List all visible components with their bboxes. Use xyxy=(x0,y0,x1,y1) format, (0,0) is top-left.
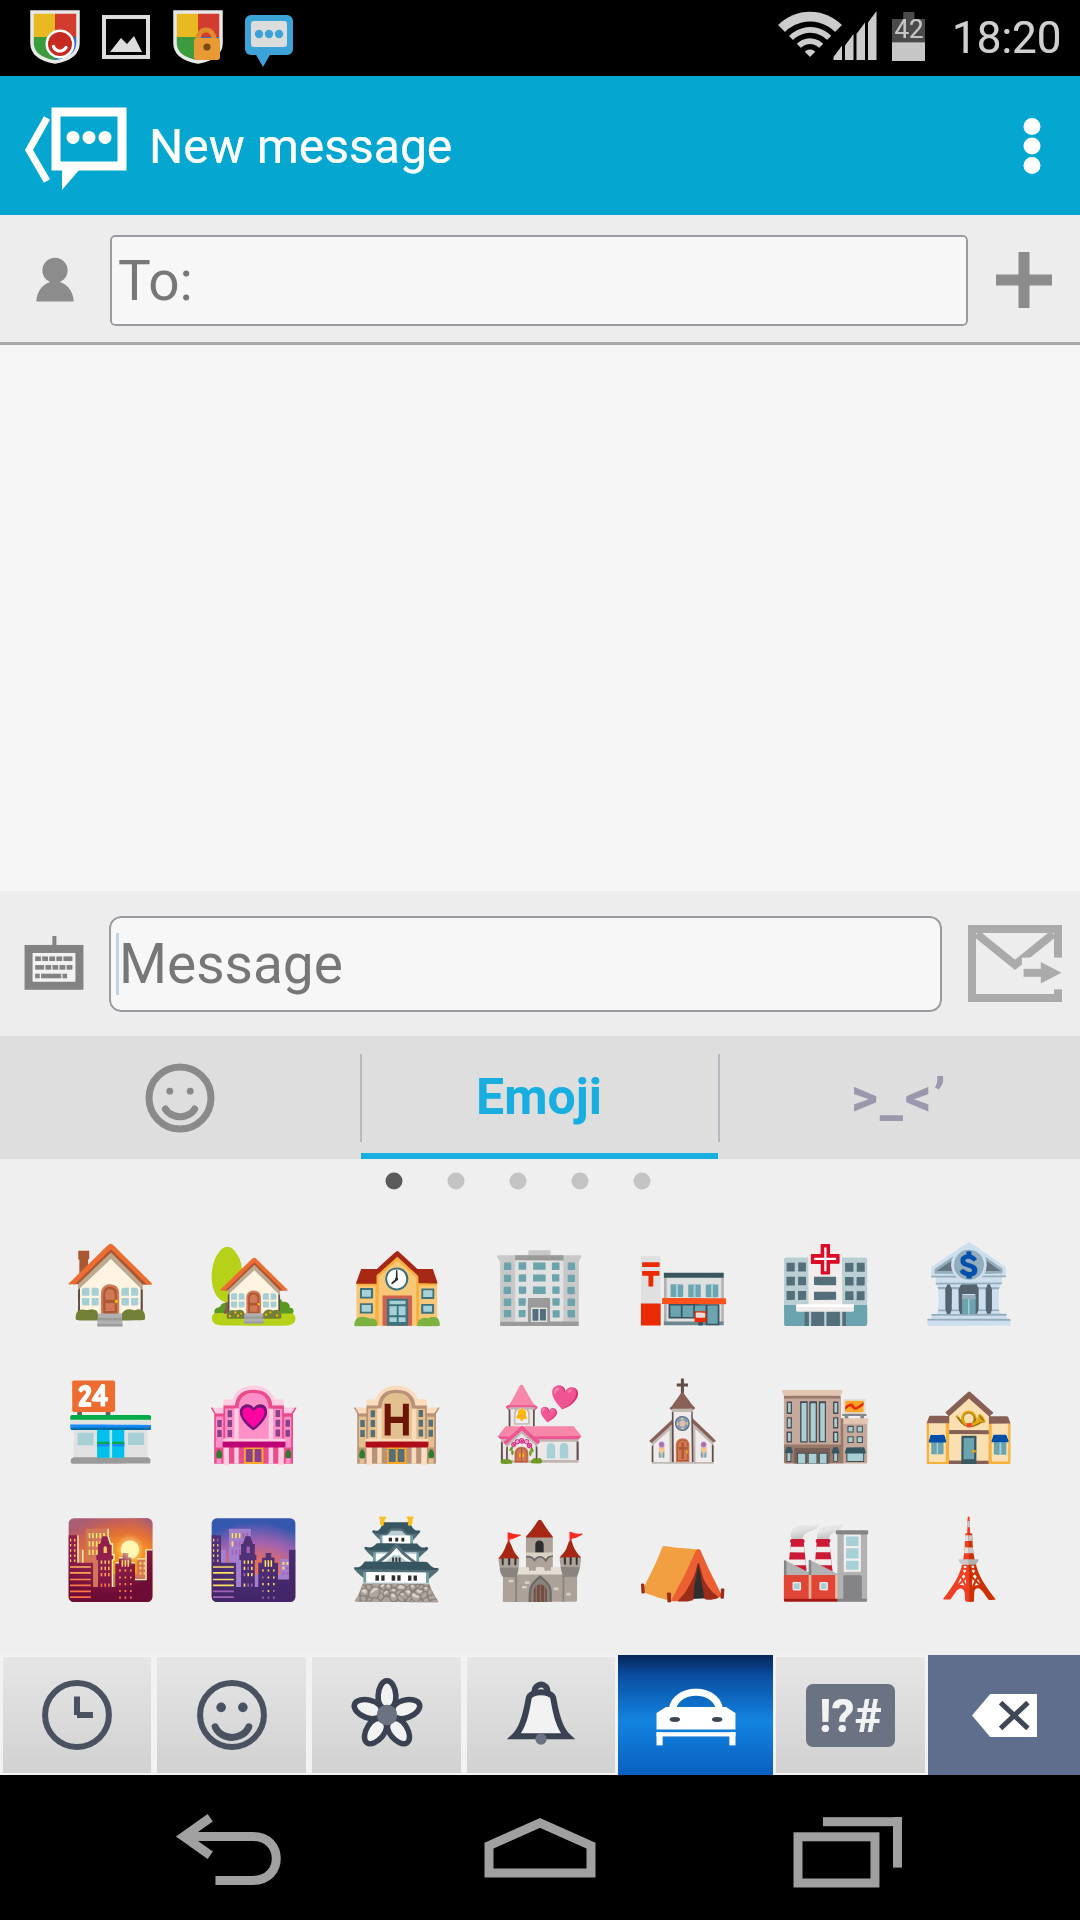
other: Back xyxy=(0,100,120,192)
staticText: 💒 xyxy=(492,1377,587,1466)
button[interactable]: Back xyxy=(150,1775,310,1920)
staticText: 🗼 xyxy=(921,1515,1016,1604)
button[interactable]: Recent apps xyxy=(770,1775,930,1920)
staticText: ⛪ xyxy=(635,1377,730,1466)
button[interactable]: 🌇 xyxy=(39,1490,181,1628)
button[interactable]: ⛪ xyxy=(611,1352,753,1490)
button[interactable]: 🏢 xyxy=(468,1214,610,1352)
staticText: To: xyxy=(118,249,193,313)
other: Keyboard xyxy=(22,936,86,992)
staticText: 🏭 xyxy=(778,1515,873,1604)
button[interactable]: More options xyxy=(984,76,1080,215)
staticText: 🏬 xyxy=(778,1377,873,1466)
button[interactable]: 🏣 xyxy=(611,1214,753,1352)
staticText: 🏥 xyxy=(778,1239,873,1328)
staticText: 🏯 xyxy=(349,1515,444,1604)
button[interactable]: Places xyxy=(618,1655,773,1775)
button[interactable]: 🏦 xyxy=(897,1214,1039,1352)
staticText: Emoji xyxy=(476,1068,602,1127)
button[interactable]: Add contact xyxy=(968,215,1080,345)
button[interactable]: 🏤 xyxy=(897,1352,1039,1490)
staticText: 🏪 xyxy=(63,1377,158,1466)
button[interactable]: 🏯 xyxy=(325,1490,467,1628)
button[interactable]: Smileys xyxy=(157,1657,306,1773)
button[interactable]: 🏨 xyxy=(325,1352,467,1490)
button[interactable]: 🏬 xyxy=(754,1352,896,1490)
button[interactable]: 🏪 xyxy=(39,1352,181,1490)
button[interactable]: 🏠 xyxy=(39,1214,181,1352)
staticText: 🏡 xyxy=(206,1239,301,1328)
button[interactable]: Back xyxy=(0,76,453,215)
button[interactable]: Nature xyxy=(312,1657,461,1773)
staticText: 🏰 xyxy=(492,1515,587,1604)
button[interactable]: >_<’ xyxy=(718,1036,1080,1159)
button[interactable]: 🗼 xyxy=(897,1490,1039,1628)
staticText: 🏫 xyxy=(349,1239,444,1328)
button[interactable]: Emoji xyxy=(360,1036,718,1159)
button[interactable]: Objects xyxy=(467,1657,615,1773)
button[interactable]: Send message xyxy=(950,891,1080,1036)
staticText: !?# xyxy=(819,1689,882,1743)
button[interactable]: 🏫 xyxy=(325,1214,467,1352)
staticText: 🏣 xyxy=(635,1239,730,1328)
button[interactable]: To: xyxy=(110,235,968,326)
staticText: 🏦 xyxy=(921,1239,1016,1328)
staticText: 42 xyxy=(893,14,925,44)
staticText: ⛺ xyxy=(635,1515,730,1604)
button[interactable]: 🏩 xyxy=(182,1352,324,1490)
staticText: 🏢 xyxy=(492,1239,587,1328)
staticText: 18:20 xyxy=(952,12,1062,64)
button[interactable]: Message xyxy=(109,916,942,1012)
button[interactable]: Home xyxy=(460,1775,620,1920)
staticText: 🏠 xyxy=(63,1239,158,1328)
button[interactable]: 🏥 xyxy=(754,1214,896,1352)
button[interactable]: 🌆 xyxy=(182,1490,324,1628)
staticText: Message xyxy=(119,932,343,996)
staticText: 🏤 xyxy=(921,1377,1016,1466)
button[interactable]: ⛺ xyxy=(611,1490,753,1628)
staticText: >_<’ xyxy=(851,1067,948,1128)
button[interactable]: Recent emoji xyxy=(0,1036,360,1159)
button[interactable]: 💒 xyxy=(468,1352,610,1490)
button[interactable]: 🏰 xyxy=(468,1490,610,1628)
staticText: 🏩 xyxy=(206,1377,301,1466)
button[interactable]: 🏭 xyxy=(754,1490,896,1628)
button[interactable]: Recent xyxy=(3,1657,151,1773)
button[interactable]: Symbols xyxy=(776,1657,925,1773)
staticText: 🌇 xyxy=(63,1515,158,1604)
button[interactable]: 🏡 xyxy=(182,1214,324,1352)
staticText: 🌆 xyxy=(206,1515,301,1604)
button[interactable]: Backspace xyxy=(928,1655,1080,1775)
staticText: 🏨 xyxy=(349,1377,444,1466)
staticText: New message xyxy=(149,118,453,174)
